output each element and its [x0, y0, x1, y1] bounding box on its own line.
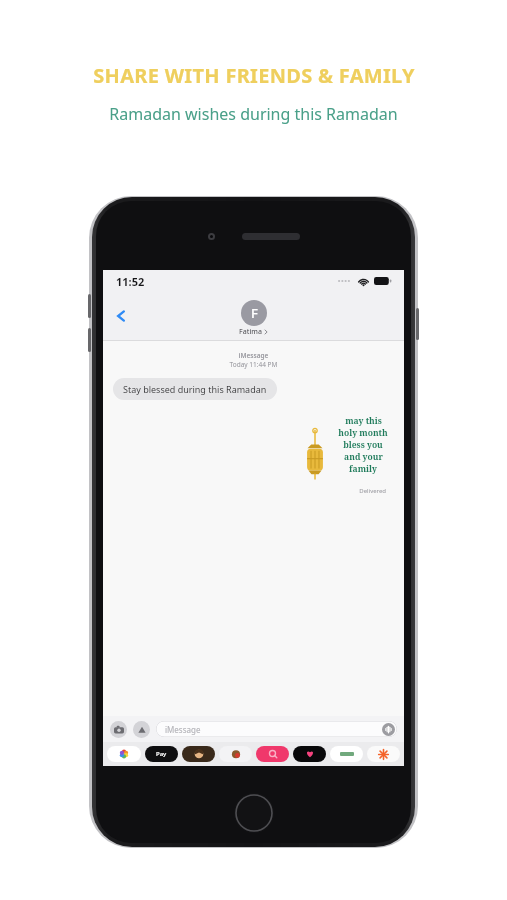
staticText: Pay	[156, 750, 167, 758]
staticText: Delivered	[103, 487, 386, 495]
button[interactable]: Back	[108, 303, 134, 329]
button[interactable]: Audio message	[382, 723, 395, 736]
staticText: Ramadan wishes during this Ramadan	[109, 103, 398, 125]
staticText: Today 11:44 PM	[103, 360, 404, 369]
staticText: may this	[345, 415, 382, 427]
staticText: F	[251, 304, 258, 322]
button[interactable]: iMessage	[156, 721, 397, 737]
staticText: and your	[344, 451, 383, 463]
button[interactable]: Sticker pack	[330, 746, 363, 762]
button[interactable]: More stickers	[367, 746, 400, 762]
staticText: SHARE WITH FRIENDS & FAMILY	[93, 62, 415, 89]
button[interactable]: Stay blessed during this Ramadan	[113, 378, 277, 400]
button[interactable]: Home	[234, 793, 274, 833]
button[interactable]: may this	[302, 413, 390, 483]
button[interactable]: Photos	[107, 746, 141, 762]
button[interactable]: Hearts	[293, 746, 326, 762]
staticText: Stay blessed during this Ramadan	[123, 383, 267, 395]
button[interactable]: Apple Pay	[145, 746, 178, 762]
staticText: bless you	[343, 439, 383, 451]
staticText: holy month	[338, 427, 388, 439]
staticText: iMessage	[165, 724, 201, 735]
staticText: 11:52	[116, 274, 145, 289]
button[interactable]: App Store	[133, 721, 150, 738]
staticText: Fatima	[239, 327, 262, 337]
button[interactable]: Giphy	[256, 746, 289, 762]
button[interactable]: F	[239, 300, 268, 337]
button[interactable]: Memoji	[182, 746, 215, 762]
button[interactable]: Animoji	[219, 746, 252, 762]
button[interactable]: Camera	[110, 721, 127, 738]
staticText: iMessage	[103, 351, 404, 360]
staticText: family	[349, 463, 377, 475]
